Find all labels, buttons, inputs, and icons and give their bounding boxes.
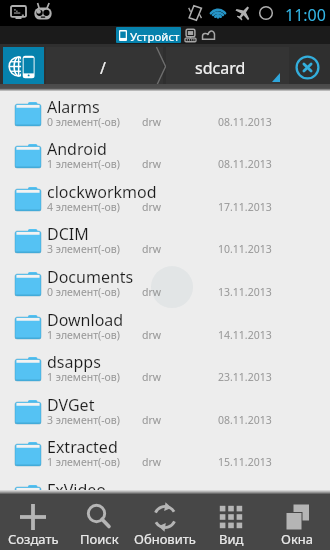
staticText: 0 элемент(-ов) [47,285,120,299]
staticText: 14.11.2013 [218,328,272,342]
staticText: 08.11.2013 [218,157,272,171]
button[interactable]: Download [0,306,330,349]
button[interactable]: Windows [264,494,330,550]
button[interactable]: FxVideo [0,476,330,519]
staticText: 11:00 [285,4,326,26]
staticText: 3 элемент(-ов) [47,413,120,427]
staticText: 2 элемент(-ов) [47,498,120,512]
staticText: drw [142,285,162,299]
button[interactable]: DCIM [0,220,330,263]
button[interactable]: Alarms [0,93,330,136]
button[interactable]: Create [0,494,66,550]
staticText: drw [142,200,162,214]
staticText: 13.11.2013 [218,285,272,299]
staticText: 12.11.2013 [218,498,272,512]
staticText: Окна [281,530,314,548]
staticText: drw [142,370,162,384]
staticText: Android [47,138,107,160]
button[interactable]: Storage root [3,47,44,86]
staticText: 1 элемент(-ов) [47,370,120,384]
staticText: drw [142,157,162,171]
staticText: 17.11.2013 [218,200,272,214]
staticText: Вид [219,530,244,548]
button[interactable]: DVGet [0,391,330,434]
staticText: Обновить [134,530,196,548]
staticText: 23.11.2013 [218,370,272,384]
button[interactable]: Computer [185,29,196,42]
staticText: / [100,57,106,79]
staticText: 3 элемент(-ов) [47,242,120,256]
button[interactable]: Documents [0,263,330,306]
staticText: DVGet [47,394,95,416]
staticText: Устройст [130,29,180,43]
button[interactable]: Android [0,135,330,178]
staticText: 1 элемент(-ов) [47,455,120,469]
button[interactable]: Refresh [132,494,198,550]
staticText: sdcard [195,57,246,79]
staticText: Download [47,309,124,331]
staticText: Alarms [47,96,100,118]
staticText: drw [142,413,162,427]
staticText: 1 элемент(-ов) [47,328,120,342]
staticText: drw [142,455,162,469]
staticText: Extracted [47,436,118,458]
button[interactable]: dsapps [0,348,330,391]
staticText: 08.11.2013 [218,413,272,427]
staticText: Documents [47,266,134,288]
staticText: FxVideo [47,479,107,501]
staticText: drw [142,498,162,512]
staticText: Поиск [80,530,119,548]
button[interactable]: Устройст [116,27,181,43]
button[interactable]: Network [202,30,215,40]
button[interactable]: Extracted [0,433,330,476]
button[interactable]: Search [66,494,132,550]
staticText: drw [142,242,162,256]
button[interactable]: View mode [198,494,264,550]
button[interactable]: / [46,47,163,86]
staticText: clockworkmod [47,181,157,203]
staticText: DCIM [47,223,89,245]
button[interactable]: Close [289,44,330,91]
button[interactable]: clockworkmod [0,178,330,221]
staticText: 10.11.2013 [218,242,272,256]
staticText: 0 элемент(-ов) [47,115,120,129]
staticText: 15.11.2013 [218,455,272,469]
staticText: Создать [8,530,59,548]
staticText: dsapps [47,351,101,373]
staticText: 4 элемент(-ов) [47,200,120,214]
staticText: drw [142,115,162,129]
button[interactable]: sdcard [166,47,289,86]
staticText: 08.11.2013 [218,115,272,129]
staticText: 1 элемент(-ов) [47,157,120,171]
staticText: drw [142,328,162,342]
